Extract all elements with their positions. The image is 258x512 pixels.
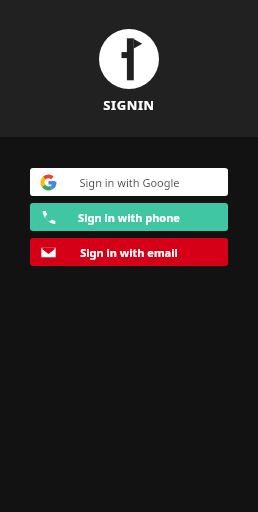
button[interactable]: Google	[30, 168, 228, 196]
staticText: Sign in with email	[80, 245, 178, 260]
staticText: Sign in with phone	[78, 210, 180, 225]
other: Email	[40, 244, 57, 261]
staticText: Sign in with Google	[79, 175, 180, 190]
other: Phone	[40, 209, 57, 226]
button[interactable]: Phone	[30, 203, 228, 231]
staticText: SIGNIN	[103, 96, 155, 114]
other: Google	[40, 174, 57, 191]
button[interactable]: Email	[30, 238, 228, 266]
